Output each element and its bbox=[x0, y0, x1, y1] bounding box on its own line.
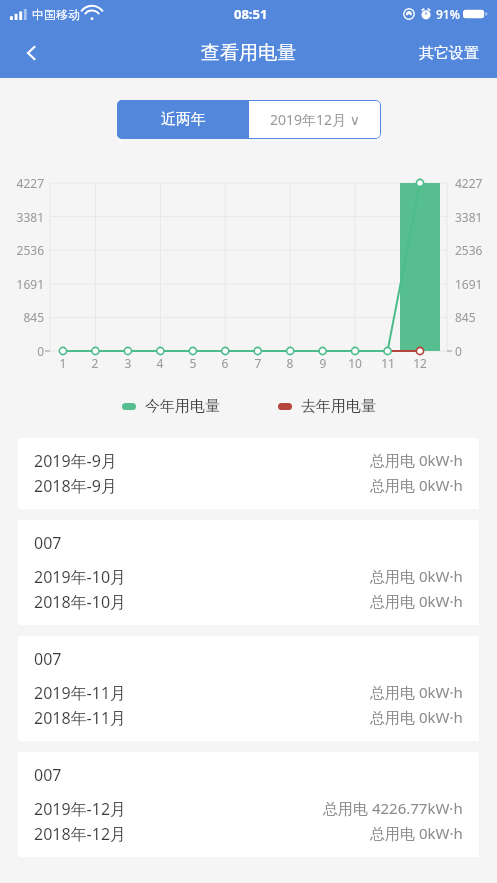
staticText: 08:51 bbox=[234, 5, 268, 23]
staticText: 9 bbox=[311, 355, 335, 371]
staticText: 845 bbox=[455, 309, 497, 325]
staticText: 总用电 0kW·h bbox=[370, 707, 463, 727]
staticText: 近两年 bbox=[161, 110, 206, 129]
staticText: 2018年-11月 bbox=[34, 707, 127, 729]
staticText: 4227 bbox=[455, 175, 497, 191]
staticText: 2536 bbox=[455, 242, 497, 258]
staticText: 8 bbox=[278, 355, 302, 371]
staticText: 4 bbox=[148, 355, 172, 371]
button[interactable]: 其它设置 bbox=[413, 38, 485, 69]
button[interactable]: 2019年-9月 bbox=[18, 438, 479, 509]
staticText: 0 bbox=[0, 343, 44, 359]
staticText: 0 bbox=[455, 343, 497, 359]
staticText: 4227 bbox=[0, 175, 44, 191]
staticText: 10 bbox=[343, 355, 367, 371]
button[interactable]: 2019年12月 ∨ bbox=[249, 100, 381, 139]
staticText: 2019年12月 ∨ bbox=[270, 110, 360, 129]
staticText: 91% bbox=[436, 6, 460, 22]
staticText: 总用电 0kW·h bbox=[370, 450, 463, 470]
staticText: 007 bbox=[34, 764, 62, 786]
staticText: 6 bbox=[213, 355, 237, 371]
staticText: 5 bbox=[181, 355, 205, 371]
staticText: 3 bbox=[116, 355, 140, 371]
staticText: 中国移动 bbox=[32, 7, 80, 22]
staticText: 总用电 4226.77kW·h bbox=[323, 798, 463, 818]
staticText: 3381 bbox=[0, 209, 44, 225]
staticText: 1 bbox=[51, 355, 75, 371]
staticText: 2018年-9月 bbox=[34, 475, 117, 497]
staticText: 845 bbox=[0, 309, 44, 325]
staticText: 1691 bbox=[455, 276, 497, 292]
button[interactable]: 去年用电量 bbox=[278, 397, 376, 416]
staticText: 3381 bbox=[455, 209, 497, 225]
staticText: 今年用电量 bbox=[145, 397, 220, 416]
staticText: 7 bbox=[246, 355, 270, 371]
staticText: 11 bbox=[376, 355, 400, 371]
button[interactable]: 近两年 bbox=[117, 100, 249, 139]
button[interactable]: 007 bbox=[18, 636, 479, 741]
staticText: 2 bbox=[83, 355, 107, 371]
staticText: 2536 bbox=[0, 242, 44, 258]
button[interactable]: 今年用电量 bbox=[122, 397, 220, 416]
staticText: 12 bbox=[408, 355, 432, 371]
button[interactable]: Back bbox=[8, 29, 56, 77]
staticText: 去年用电量 bbox=[301, 397, 376, 416]
staticText: 总用电 0kW·h bbox=[370, 823, 463, 843]
staticText: 总用电 0kW·h bbox=[370, 566, 463, 586]
staticText: 2019年-10月 bbox=[34, 566, 127, 588]
staticText: 2019年-9月 bbox=[34, 450, 117, 472]
staticText: 007 bbox=[34, 532, 62, 554]
staticText: 2018年-12月 bbox=[34, 823, 127, 845]
staticText: 总用电 0kW·h bbox=[370, 475, 463, 495]
staticText: 查看用电量 bbox=[201, 41, 296, 65]
staticText: 2019年-11月 bbox=[34, 682, 127, 704]
staticText: 总用电 0kW·h bbox=[370, 591, 463, 611]
button[interactable]: 007 bbox=[18, 520, 479, 625]
staticText: 总用电 0kW·h bbox=[370, 682, 463, 702]
staticText: 2019年-12月 bbox=[34, 798, 127, 820]
staticText: 007 bbox=[34, 648, 62, 670]
staticText: 2018年-10月 bbox=[34, 591, 127, 613]
staticText: 其它设置 bbox=[419, 44, 479, 63]
staticText: 1691 bbox=[0, 276, 44, 292]
button[interactable]: 007 bbox=[18, 752, 479, 857]
